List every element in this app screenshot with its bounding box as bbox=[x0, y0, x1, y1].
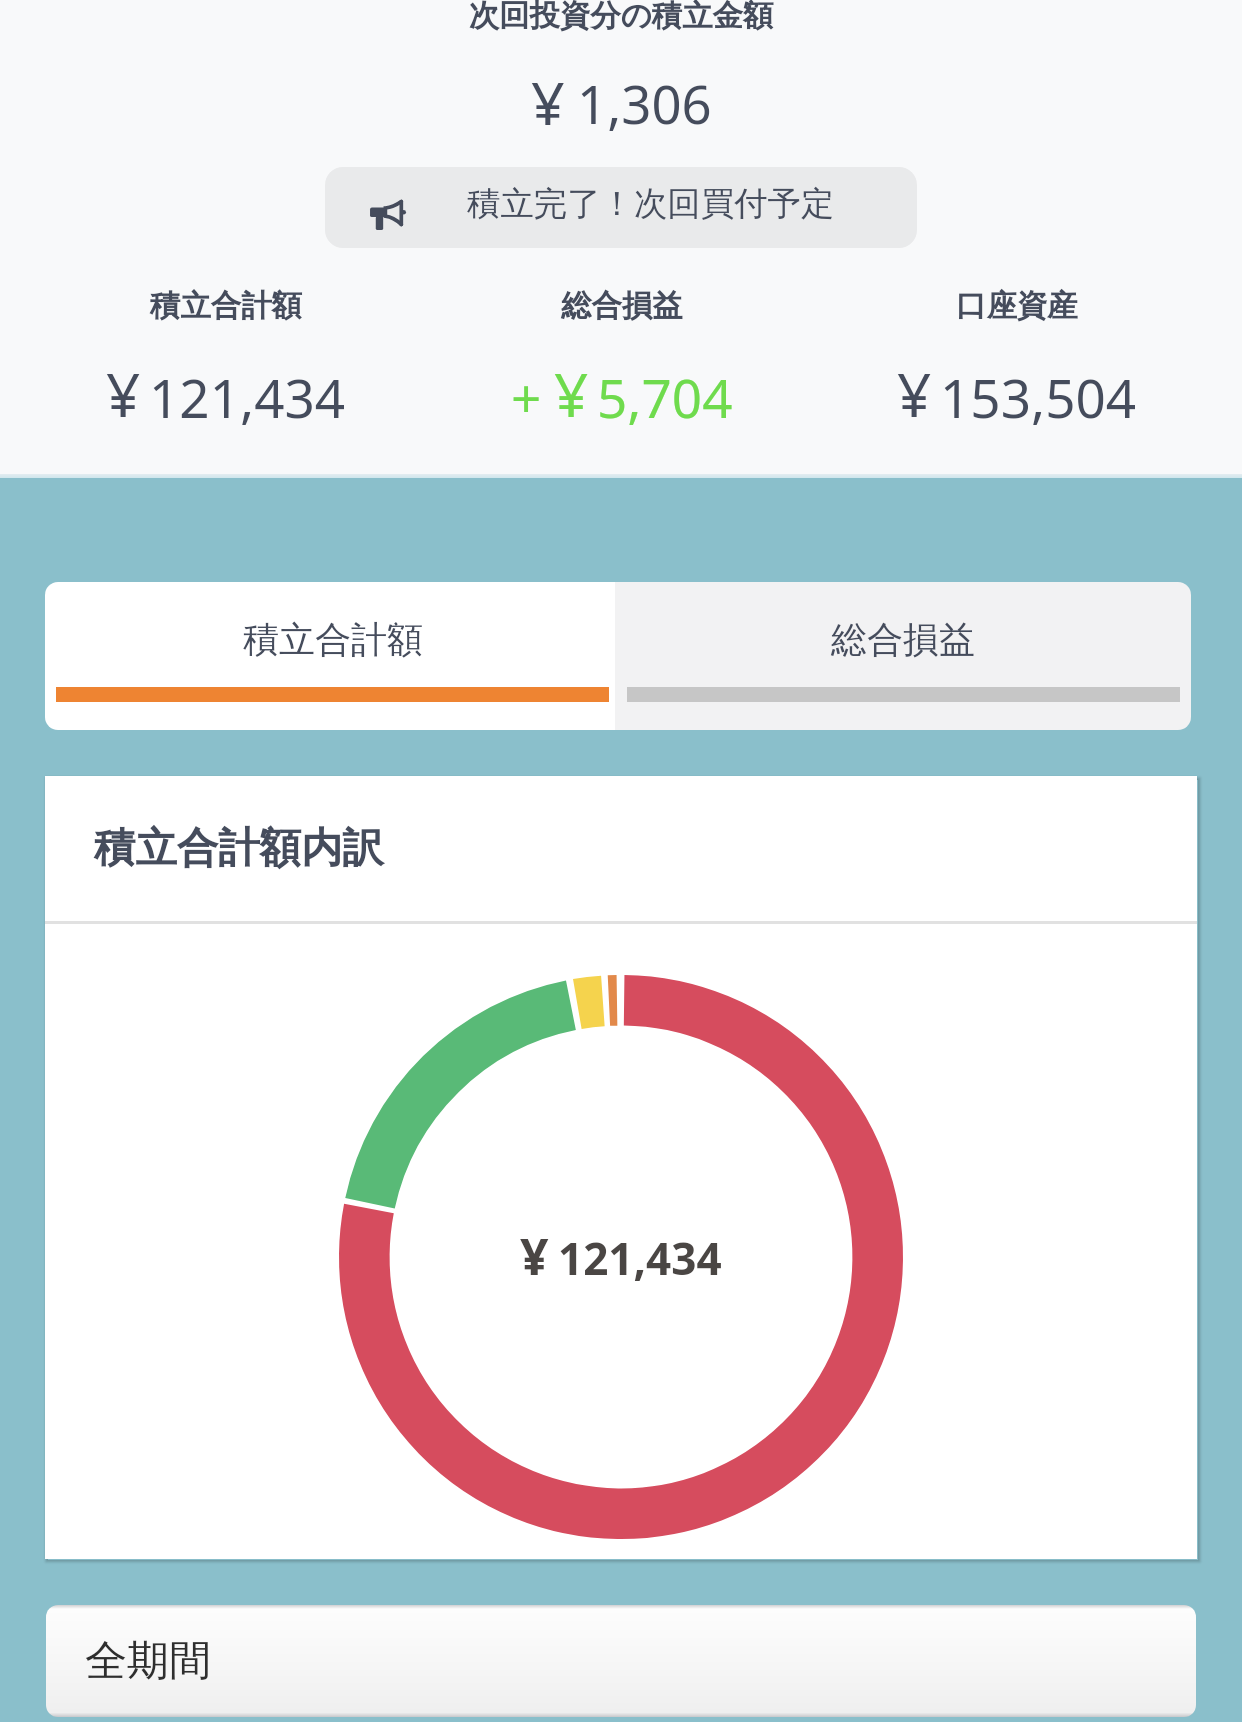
staticText: 121,434 bbox=[149, 361, 346, 433]
staticText: 153,504 bbox=[940, 361, 1137, 433]
staticText: 5,704 bbox=[597, 361, 733, 433]
staticText: 積立合計額 bbox=[243, 617, 423, 662]
button[interactable]: 全期間 bbox=[46, 1605, 1196, 1717]
staticText: 総合損益 bbox=[561, 287, 683, 325]
staticText: 積立合計額 bbox=[150, 287, 302, 325]
staticText: 総合損益 bbox=[831, 617, 975, 662]
staticText: 121,434 bbox=[558, 1228, 722, 1288]
staticText: + bbox=[511, 361, 542, 433]
staticText: 積立合計額内訳 bbox=[94, 822, 384, 874]
staticText: 全期間 bbox=[85, 1635, 211, 1688]
staticText: 積立完了！次回買付予定 bbox=[467, 183, 835, 225]
staticText: 口座資産 bbox=[956, 287, 1078, 325]
staticText: 1,306 bbox=[577, 68, 712, 140]
staticText: ¥ bbox=[520, 1222, 549, 1290]
other: お知らせ bbox=[368, 199, 405, 230]
staticText: ¥ bbox=[554, 353, 589, 435]
staticText: ¥ bbox=[897, 353, 932, 435]
button[interactable]: 総合損益 bbox=[615, 582, 1191, 730]
button[interactable]: お知らせ bbox=[325, 167, 917, 248]
button[interactable]: 積立合計額 bbox=[45, 582, 615, 730]
staticText: ¥ bbox=[106, 353, 141, 435]
staticText: ¥ bbox=[531, 62, 565, 142]
staticText: 次回投資分の積立金額 bbox=[0, 0, 1242, 35]
